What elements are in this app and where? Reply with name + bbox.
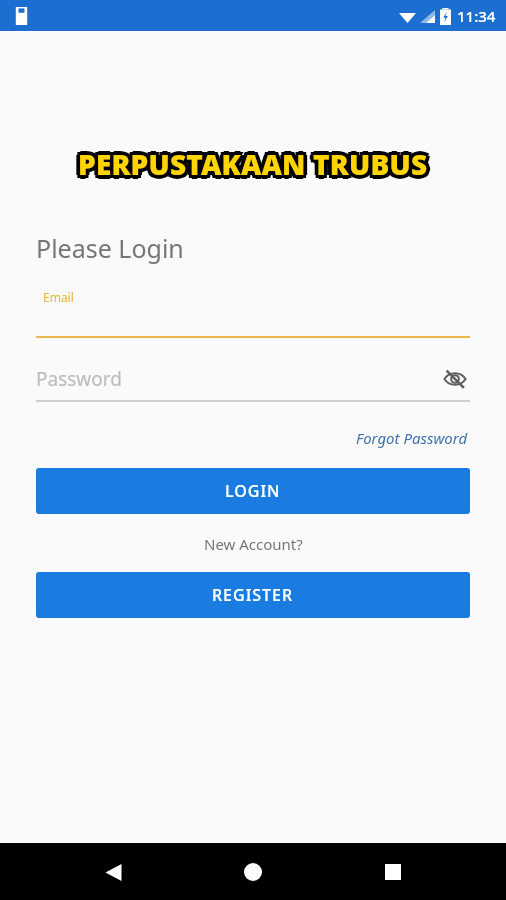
staticText: PERPUSTAKAAN TRUBUS — [78, 142, 428, 180]
staticText: PERPUSTAKAAN TRUBUS — [74, 145, 424, 183]
button[interactable]: Back — [86, 845, 140, 899]
button[interactable]: Forgot Password — [354, 426, 470, 450]
staticText: PERPUSTAKAAN TRUBUS — [81, 145, 431, 183]
staticText: PERPUSTAKAAN TRUBUS — [81, 148, 431, 186]
staticText: PERPUSTAKAAN TRUBUS — [81, 142, 431, 180]
button[interactable]: Password — [36, 364, 470, 402]
button[interactable]: LOGIN — [36, 468, 470, 514]
button[interactable]: Show password — [440, 364, 470, 394]
staticText: PERPUSTAKAAN TRUBUS — [80, 143, 430, 181]
staticText: PERPUSTAKAAN TRUBUS — [80, 147, 430, 185]
staticText: Please Login — [36, 231, 184, 265]
staticText: LOGIN — [225, 480, 281, 502]
staticText: PERPUSTAKAAN TRUBUS — [78, 149, 428, 187]
staticText: 11:34 — [457, 6, 496, 26]
button[interactable]: Recents — [366, 845, 420, 899]
staticText: Password — [36, 366, 440, 392]
staticText: PERPUSTAKAAN TRUBUS — [82, 145, 432, 183]
button[interactable]: New Account? — [202, 532, 305, 556]
staticText: PERPUSTAKAAN TRUBUS — [78, 148, 428, 186]
staticText: PERPUSTAKAAN TRUBUS — [76, 147, 426, 185]
staticText: PERPUSTAKAAN TRUBUS — [75, 142, 425, 180]
staticText: Email — [43, 289, 74, 305]
button[interactable]: Home — [226, 845, 280, 899]
staticText: PERPUSTAKAAN TRUBUS — [76, 143, 426, 181]
staticText: PERPUSTAKAAN TRUBUS — [78, 145, 428, 183]
staticText: PERPUSTAKAAN TRUBUS — [75, 145, 425, 183]
staticText: PERPUSTAKAAN TRUBUS — [78, 141, 428, 179]
staticText: REGISTER — [212, 584, 294, 606]
button[interactable]: Email — [36, 289, 470, 338]
staticText: PERPUSTAKAAN TRUBUS — [75, 148, 425, 186]
button[interactable]: REGISTER — [36, 572, 470, 618]
